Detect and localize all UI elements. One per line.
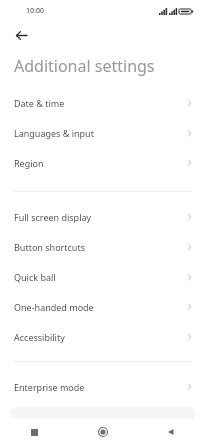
staticText: Full screen display: [14, 211, 92, 223]
button[interactable]: Home: [69, 418, 137, 446]
button[interactable]: Recent apps: [0, 418, 69, 446]
staticText: Enterprise mode: [14, 381, 85, 393]
staticText: Additional settings: [14, 55, 155, 77]
button[interactable]: Back: [137, 418, 205, 446]
button[interactable]: Languages & input: [0, 118, 205, 148]
staticText: Languages & input: [14, 127, 94, 139]
button[interactable]: Quick ball: [0, 262, 205, 292]
staticText: 10:00: [26, 6, 44, 16]
button[interactable]: Button shortcuts: [0, 232, 205, 262]
staticText: Region: [14, 157, 44, 169]
button[interactable]: One-handed mode: [0, 292, 205, 322]
button[interactable]: Enterprise mode: [0, 372, 205, 402]
staticText: Button shortcuts: [14, 241, 85, 253]
button[interactable]: Full screen display: [0, 202, 205, 232]
staticText: Quick ball: [14, 271, 56, 283]
staticText: One-handed mode: [14, 301, 94, 313]
staticText: Accessibility: [14, 331, 65, 343]
button[interactable]: Region: [0, 148, 205, 178]
button[interactable]: Date & time: [0, 88, 205, 118]
staticText: Date & time: [14, 97, 65, 109]
button[interactable]: Accessibility: [0, 322, 205, 352]
button[interactable]: Back: [8, 22, 34, 48]
